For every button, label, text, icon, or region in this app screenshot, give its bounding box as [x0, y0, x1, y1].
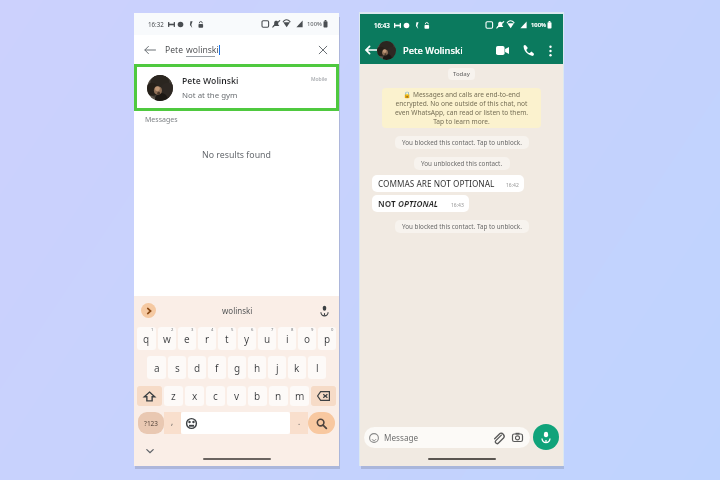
- staticText: 16:43: [451, 202, 464, 209]
- button[interactable]: More options: [545, 45, 556, 56]
- button[interactable]: a: [147, 356, 166, 379]
- button[interactable]: Attach: [492, 432, 504, 444]
- button[interactable]: Video call: [494, 42, 511, 59]
- staticText: OPTIONAL: [398, 198, 439, 209]
- staticText: 4: [211, 327, 214, 333]
- staticText: No results found: [202, 149, 271, 161]
- button[interactable]: You unblocked this contact.: [421, 159, 503, 168]
- button[interactable]: Hide keyboard: [145, 446, 155, 456]
- button[interactable]: j: [268, 356, 286, 379]
- button[interactable]: q: [137, 327, 156, 350]
- button[interactable]: Pete Wolinski: [134, 64, 339, 111]
- staticText: 1: [151, 327, 154, 333]
- button[interactable]: l: [308, 356, 326, 379]
- button[interactable]: Voice input: [319, 305, 330, 316]
- staticText: 16:43: [374, 21, 390, 29]
- button[interactable]: r: [198, 327, 216, 350]
- button[interactable]: Message: [369, 427, 523, 448]
- button[interactable]: Contact photo: [377, 41, 396, 60]
- button[interactable]: Emoji: [181, 412, 202, 434]
- staticText: 3: [191, 327, 194, 333]
- staticText: o: [304, 332, 311, 346]
- staticText: k: [294, 361, 300, 375]
- button[interactable]: Voice call: [521, 43, 536, 58]
- button[interactable]: k: [288, 356, 306, 379]
- button[interactable]: p: [318, 327, 336, 350]
- button[interactable]: o: [298, 327, 316, 350]
- button[interactable]: Shift: [137, 386, 162, 406]
- staticText: e: [184, 332, 190, 346]
- staticText: w: [163, 332, 171, 346]
- button[interactable]: Expand suggestions: [141, 303, 156, 318]
- staticText: q: [143, 332, 150, 346]
- staticText: j: [276, 361, 279, 375]
- button[interactable]: d: [188, 356, 206, 379]
- staticText: r: [205, 332, 210, 346]
- staticText: 7: [271, 327, 274, 333]
- staticText: wolinski: [222, 305, 253, 316]
- staticText: z: [171, 389, 176, 403]
- button[interactable]: Back: [144, 44, 156, 56]
- staticText: ?123: [144, 419, 159, 428]
- staticText: COMMAS ARE NOT OPTIONAL: [378, 178, 495, 189]
- button[interactable]: u: [258, 327, 276, 350]
- staticText: t: [225, 332, 229, 346]
- staticText: n: [275, 389, 282, 403]
- button[interactable]: Backspace: [311, 386, 336, 406]
- staticText: h: [254, 361, 261, 375]
- button[interactable]: ,: [164, 412, 181, 434]
- button[interactable]: g: [228, 356, 246, 379]
- button[interactable]: v: [227, 386, 246, 406]
- staticText: f: [215, 361, 219, 375]
- button[interactable]: ?123: [138, 412, 164, 434]
- staticText: 100%: [531, 21, 546, 29]
- staticText: 8: [291, 327, 294, 333]
- staticText: g: [234, 361, 241, 375]
- staticText: NOT: [378, 198, 398, 209]
- staticText: Messages: [145, 115, 178, 125]
- staticText: u: [264, 332, 271, 346]
- staticText: wolinski: [186, 44, 219, 56]
- staticText: 5: [231, 327, 234, 333]
- staticText: c: [213, 389, 218, 403]
- button[interactable]: Record voice message: [533, 424, 559, 450]
- button[interactable]: x: [185, 386, 204, 406]
- staticText: Pete Wolinski: [182, 75, 239, 87]
- button[interactable]: t: [218, 327, 236, 350]
- button[interactable]: n: [269, 386, 288, 406]
- staticText: s: [175, 361, 180, 375]
- staticText: 6: [251, 327, 254, 333]
- staticText: 0: [331, 327, 334, 333]
- button[interactable]: y: [238, 327, 256, 350]
- button[interactable]: i: [278, 327, 296, 350]
- button[interactable]: b: [248, 386, 267, 406]
- staticText: 2: [171, 327, 174, 333]
- button[interactable]: Clear search: [318, 45, 328, 55]
- staticText: b: [254, 389, 261, 403]
- staticText: 9: [311, 327, 314, 333]
- button[interactable]: f: [208, 356, 226, 379]
- button[interactable]: Back: [365, 44, 377, 56]
- button[interactable]: Camera: [512, 432, 523, 443]
- button[interactable]: m: [290, 386, 309, 406]
- button[interactable]: h: [248, 356, 266, 379]
- staticText: 🔒 Messages and calls are end-to-end encr…: [390, 90, 533, 126]
- button[interactable]: c: [206, 386, 225, 406]
- staticText: Today: [453, 70, 470, 78]
- staticText: y: [244, 332, 250, 346]
- staticText: 16:42: [506, 182, 519, 189]
- button[interactable]: Search: [308, 412, 335, 434]
- staticText: Message: [384, 432, 419, 443]
- button[interactable]: You blocked this contact. Tap to unblock…: [402, 222, 522, 231]
- staticText: d: [194, 361, 201, 375]
- button[interactable]: w: [158, 327, 176, 350]
- button[interactable]: You blocked this contact. Tap to unblock…: [402, 138, 522, 147]
- button[interactable]: z: [164, 386, 183, 406]
- staticText: .: [298, 416, 301, 427]
- button[interactable]: e: [178, 327, 196, 350]
- button[interactable]: s: [168, 356, 186, 379]
- staticText: p: [324, 332, 331, 346]
- staticText: ,: [171, 416, 174, 427]
- button[interactable]: .: [290, 412, 308, 434]
